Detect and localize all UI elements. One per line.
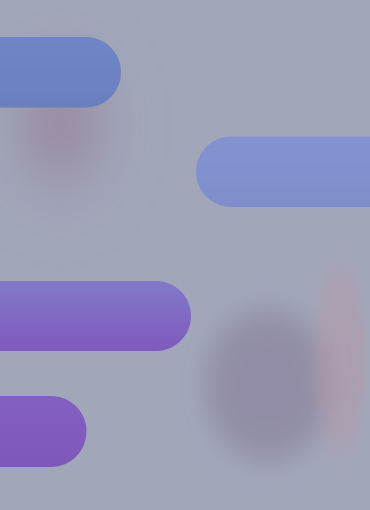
button[interactable]: Bar four <box>0 396 86 467</box>
button[interactable]: Bar one <box>0 37 121 107</box>
button[interactable]: Bar two <box>196 136 370 207</box>
button[interactable]: Bar three <box>0 281 191 351</box>
